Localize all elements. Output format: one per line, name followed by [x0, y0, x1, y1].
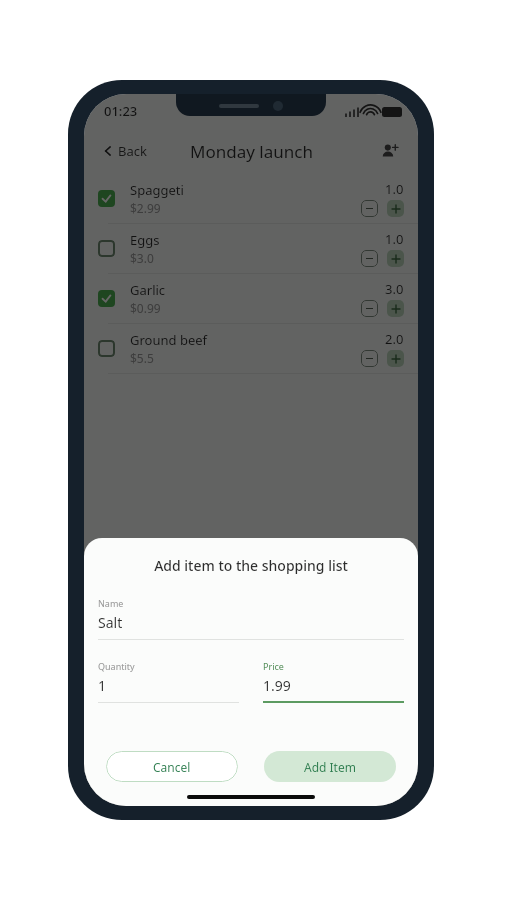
button[interactable]: Checked — [98, 190, 115, 207]
staticText: Add item to the shopping list — [84, 556, 418, 575]
staticText: 3.0 — [385, 280, 404, 298]
staticText: Ground beef — [130, 331, 208, 349]
staticText: Quantity — [98, 660, 135, 672]
button[interactable]: Checked — [84, 274, 418, 323]
button[interactable]: Cancel — [106, 751, 238, 782]
staticText: Eggs — [130, 231, 160, 249]
staticText: Monday launch — [190, 140, 313, 163]
staticText: $2.99 — [130, 200, 161, 216]
button[interactable]: Decrease — [361, 200, 378, 217]
button[interactable]: Decrease — [361, 350, 378, 367]
staticText: Salt — [98, 613, 123, 632]
button[interactable]: Unchecked — [84, 324, 418, 373]
staticText: 2.0 — [385, 330, 404, 348]
button[interactable]: Add person — [375, 137, 404, 166]
button[interactable]: Checked — [98, 290, 115, 307]
staticText: Price — [263, 660, 284, 672]
staticText: Back — [118, 142, 147, 160]
staticText: 1.0 — [385, 230, 404, 248]
button[interactable]: Quantity — [98, 660, 239, 703]
staticText: Add Item — [304, 759, 356, 775]
staticText: $0.99 — [130, 300, 161, 316]
button[interactable]: Back — [96, 138, 153, 164]
button[interactable]: Decrease — [361, 250, 378, 267]
button[interactable]: Add Item — [264, 751, 396, 782]
button[interactable]: Decrease — [361, 300, 378, 317]
staticText: 1.99 — [263, 676, 291, 695]
staticText: $5.5 — [130, 350, 154, 366]
staticText: Cancel — [153, 759, 191, 775]
button[interactable]: Price — [263, 660, 404, 703]
button[interactable]: Increase — [387, 300, 404, 317]
button[interactable]: Unchecked — [84, 224, 418, 273]
staticText: Spaggeti — [130, 181, 184, 199]
button[interactable]: Increase — [387, 200, 404, 217]
button[interactable]: Name — [98, 597, 404, 640]
staticText: 1 — [98, 676, 107, 695]
button[interactable]: Unchecked — [98, 240, 115, 257]
button[interactable]: Increase — [387, 250, 404, 267]
staticText: $3.0 — [130, 250, 154, 266]
button[interactable]: Increase — [387, 350, 404, 367]
staticText: 01:23 — [104, 102, 138, 120]
staticText: Name — [98, 597, 124, 609]
staticText: Garlic — [130, 281, 166, 299]
button[interactable]: Checked — [84, 174, 418, 223]
staticText: 1.0 — [385, 180, 404, 198]
button[interactable]: Unchecked — [98, 340, 115, 357]
